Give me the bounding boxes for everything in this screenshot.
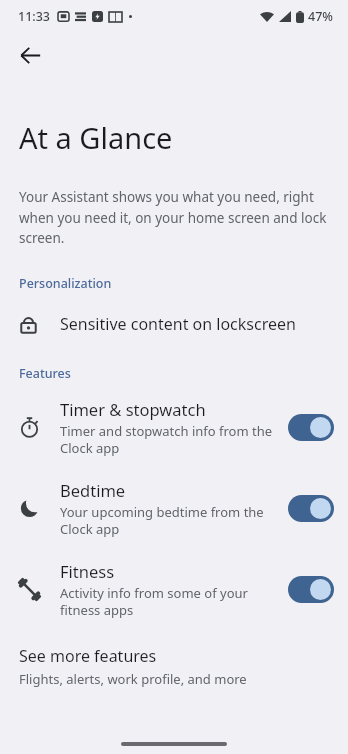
button[interactable]: Bedtime	[0, 477, 348, 540]
button[interactable]: Fitness	[288, 576, 334, 603]
staticText: 47%	[308, 8, 333, 25]
button[interactable]: Bedtime	[288, 495, 334, 522]
staticText: Sensitive content on lockscreen	[60, 313, 296, 335]
button[interactable]: Back	[8, 33, 52, 77]
staticText: Features	[19, 365, 71, 382]
button[interactable]: Timer and stopwatch	[288, 414, 334, 441]
staticText: At a Glance	[19, 118, 173, 157]
button[interactable]: Fitness	[0, 558, 348, 621]
staticText: Your upcoming bedtime from the Clock app	[60, 503, 278, 538]
staticText: Your Assistant shows you what you need, …	[19, 188, 330, 247]
staticText: Bedtime	[60, 479, 126, 501]
staticText: Personalization	[19, 275, 112, 292]
staticText: Timer and stopwatch info from the Clock …	[60, 422, 278, 457]
staticText: Activity info from some of your fitness …	[60, 584, 278, 619]
staticText: Fitness	[60, 560, 115, 582]
button[interactable]: Sensitive content on lockscreen	[0, 309, 348, 339]
staticText: Timer & stopwatch	[60, 398, 206, 420]
button[interactable]: Timer & stopwatch	[0, 396, 348, 459]
staticText: Flights, alerts, work profile, and more	[19, 670, 247, 688]
staticText: See more features	[19, 645, 157, 667]
staticText: 11:33	[18, 8, 51, 25]
button[interactable]: See more features	[0, 641, 348, 694]
